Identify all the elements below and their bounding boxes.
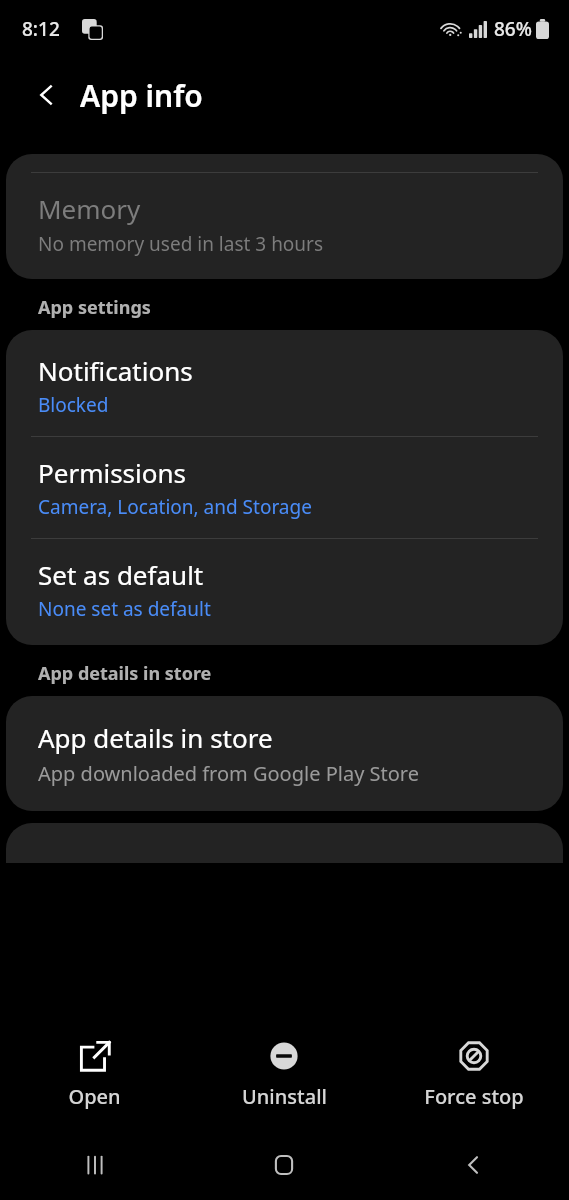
staticText: Notifications bbox=[38, 353, 193, 388]
button[interactable]: Notifications bbox=[6, 335, 563, 436]
button[interactable]: Force stop bbox=[379, 1031, 569, 1118]
button[interactable]: Back bbox=[379, 1130, 569, 1200]
staticText: Force stop bbox=[424, 1083, 524, 1110]
staticText: None set as default bbox=[38, 596, 211, 622]
staticText: Memory bbox=[38, 191, 141, 226]
staticText: App downloaded from Google Play Store bbox=[38, 760, 419, 787]
button[interactable]: App details in store bbox=[6, 696, 563, 811]
button[interactable]: Uninstall bbox=[189, 1031, 379, 1118]
staticText: Blocked bbox=[38, 392, 109, 418]
staticText: 86% bbox=[494, 16, 532, 42]
button[interactable]: Set as default bbox=[6, 539, 563, 640]
staticText: App settings bbox=[38, 295, 151, 320]
staticText: Set as default bbox=[38, 557, 204, 592]
staticText: 8:12 bbox=[22, 16, 60, 42]
button[interactable]: Recent apps bbox=[0, 1130, 189, 1200]
staticText: Camera, Location, and Storage bbox=[38, 494, 312, 520]
button[interactable]: Back bbox=[24, 72, 70, 118]
button[interactable]: Open bbox=[0, 1031, 189, 1118]
staticText: Open bbox=[68, 1083, 121, 1110]
button[interactable]: Permissions bbox=[6, 437, 563, 538]
button[interactable]: Memory bbox=[6, 154, 563, 279]
staticText: App info bbox=[80, 75, 203, 116]
staticText: No memory used in last 3 hours bbox=[38, 231, 324, 257]
staticText: Uninstall bbox=[242, 1083, 327, 1110]
staticText: App details in store bbox=[38, 661, 212, 686]
staticText: Permissions bbox=[38, 455, 187, 490]
button[interactable]: Home bbox=[189, 1130, 379, 1200]
button[interactable] bbox=[6, 823, 563, 863]
staticText: App details in store bbox=[38, 720, 273, 755]
